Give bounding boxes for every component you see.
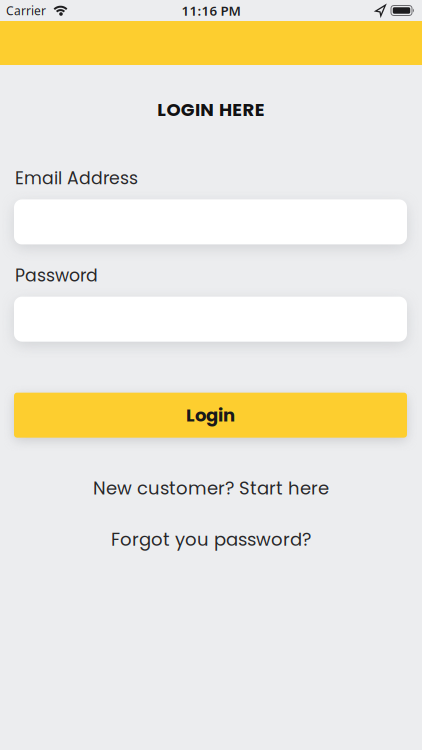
button[interactable]: Login: [0, 393, 422, 438]
staticText: Carrier: [6, 2, 46, 18]
staticText: Email Address: [15, 166, 138, 190]
staticText: Forgot you password?: [111, 527, 311, 552]
button[interactable]: Forgot you password?: [111, 527, 311, 552]
staticText: Password: [15, 263, 98, 288]
staticText: LOGIN HERE: [157, 97, 265, 122]
button[interactable]: New customer? Start here: [93, 476, 329, 501]
staticText: Login: [186, 402, 235, 428]
staticText: New customer? Start here: [93, 476, 329, 501]
staticText: 11:16 PM: [181, 2, 240, 19]
